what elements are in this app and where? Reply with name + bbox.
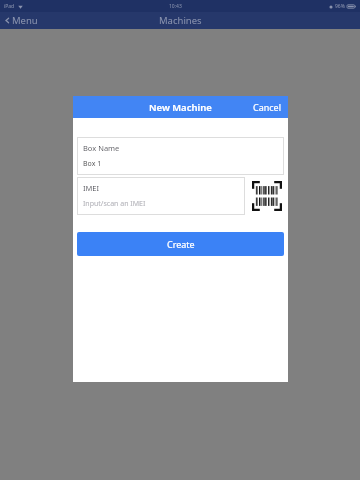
staticText: 96% [335, 3, 345, 10]
staticText: 10:43 [169, 3, 182, 10]
staticText: New Machine [149, 101, 212, 114]
staticText: Menu [12, 14, 38, 27]
button[interactable]: Create [77, 232, 284, 256]
staticText: Create [167, 238, 195, 250]
button[interactable]: Menu [0, 14, 42, 27]
button[interactable]: IMEI [77, 177, 245, 215]
staticText: Box Name [83, 143, 120, 153]
staticText: Box 1 [83, 159, 102, 169]
staticText: Cancel [253, 101, 282, 113]
staticText: Input/scan an IMEI [83, 199, 146, 209]
staticText: IMEI [83, 183, 100, 193]
staticText: Machines [159, 14, 202, 27]
staticText: iPad [4, 3, 15, 10]
button[interactable]: Scan barcode [251, 180, 283, 212]
button[interactable]: Cancel [247, 97, 288, 117]
button[interactable]: Box Name [77, 137, 284, 175]
